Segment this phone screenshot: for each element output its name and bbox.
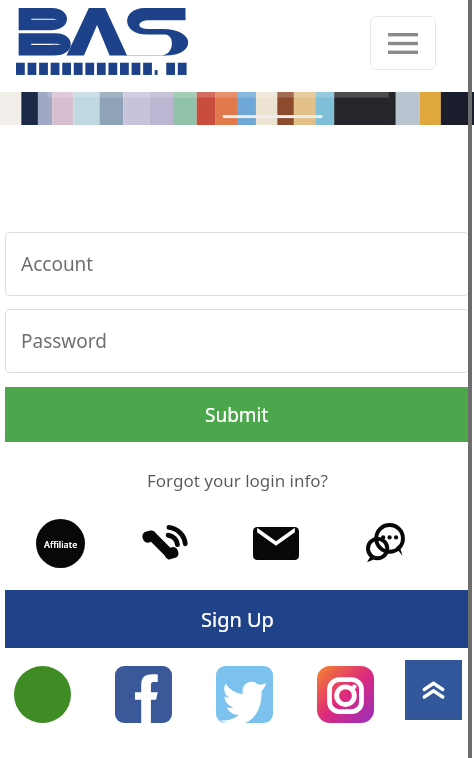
staticText: Submit bbox=[205, 402, 269, 428]
button[interactable]: WhatsApp bbox=[14, 666, 71, 723]
staticText: Sign Up bbox=[201, 606, 274, 633]
button[interactable]: Sign Up bbox=[5, 590, 469, 648]
button[interactable]: Email us bbox=[249, 516, 303, 570]
button[interactable]: Promotions banner bbox=[0, 92, 474, 125]
button[interactable]: Password bbox=[5, 309, 469, 373]
staticText: Account bbox=[21, 251, 94, 277]
button[interactable]: Live chat bbox=[358, 516, 412, 570]
button[interactable]: Forgot your login info? bbox=[0, 469, 474, 492]
button[interactable]: Call us bbox=[140, 516, 194, 570]
staticText: Forgot your login info? bbox=[147, 469, 328, 492]
staticText: Password bbox=[21, 328, 107, 354]
button[interactable]: Affiliate bbox=[36, 519, 85, 568]
button[interactable]: Twitter bbox=[216, 666, 273, 723]
staticText: Affiliate bbox=[44, 538, 78, 550]
button[interactable]: Facebook bbox=[115, 666, 172, 723]
button[interactable]: Account bbox=[5, 232, 469, 296]
button[interactable]: Submit bbox=[5, 387, 469, 442]
button[interactable]: Scroll to top bbox=[405, 660, 462, 720]
button[interactable]: BetAnySports bbox=[16, 8, 192, 80]
button[interactable]: Instagram bbox=[317, 666, 374, 723]
button[interactable]: Menu bbox=[370, 16, 436, 70]
